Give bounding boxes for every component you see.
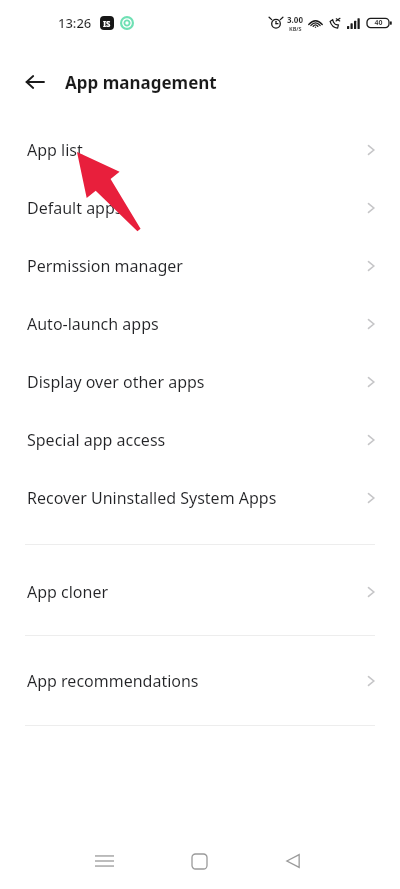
button[interactable]: Back xyxy=(21,68,49,96)
staticText: App list xyxy=(27,139,83,161)
staticText: Display over other apps xyxy=(27,371,205,393)
staticText: 13:26 xyxy=(58,14,92,32)
button[interactable]: App recommendations xyxy=(0,652,400,710)
button[interactable]: Home xyxy=(175,837,223,885)
button[interactable]: Special app access xyxy=(0,411,400,469)
button[interactable]: App cloner xyxy=(0,563,400,621)
staticText: App recommendations xyxy=(27,670,199,692)
staticText: 3.00 xyxy=(287,14,303,25)
staticText: Permission manager xyxy=(27,255,183,277)
staticText: Auto-launch apps xyxy=(27,313,159,335)
staticText: IS xyxy=(103,18,111,29)
button[interactable]: Default apps xyxy=(0,179,400,237)
button[interactable]: Permission manager xyxy=(0,237,400,295)
staticText: Special app access xyxy=(27,429,166,451)
staticText: App management xyxy=(65,71,217,94)
button[interactable]: Back xyxy=(269,837,317,885)
button[interactable]: Display over other apps xyxy=(0,353,400,411)
button[interactable]: App list xyxy=(0,121,400,179)
button[interactable]: Auto-launch apps xyxy=(0,295,400,353)
staticText: KB/S xyxy=(289,25,302,32)
staticText: Recover Uninstalled System Apps xyxy=(27,487,277,509)
staticText: App cloner xyxy=(27,581,109,603)
staticText: 40 xyxy=(374,18,383,28)
button[interactable]: Recent apps xyxy=(80,837,128,885)
button[interactable]: Recover Uninstalled System Apps xyxy=(0,469,400,527)
staticText: Default apps xyxy=(27,197,123,219)
